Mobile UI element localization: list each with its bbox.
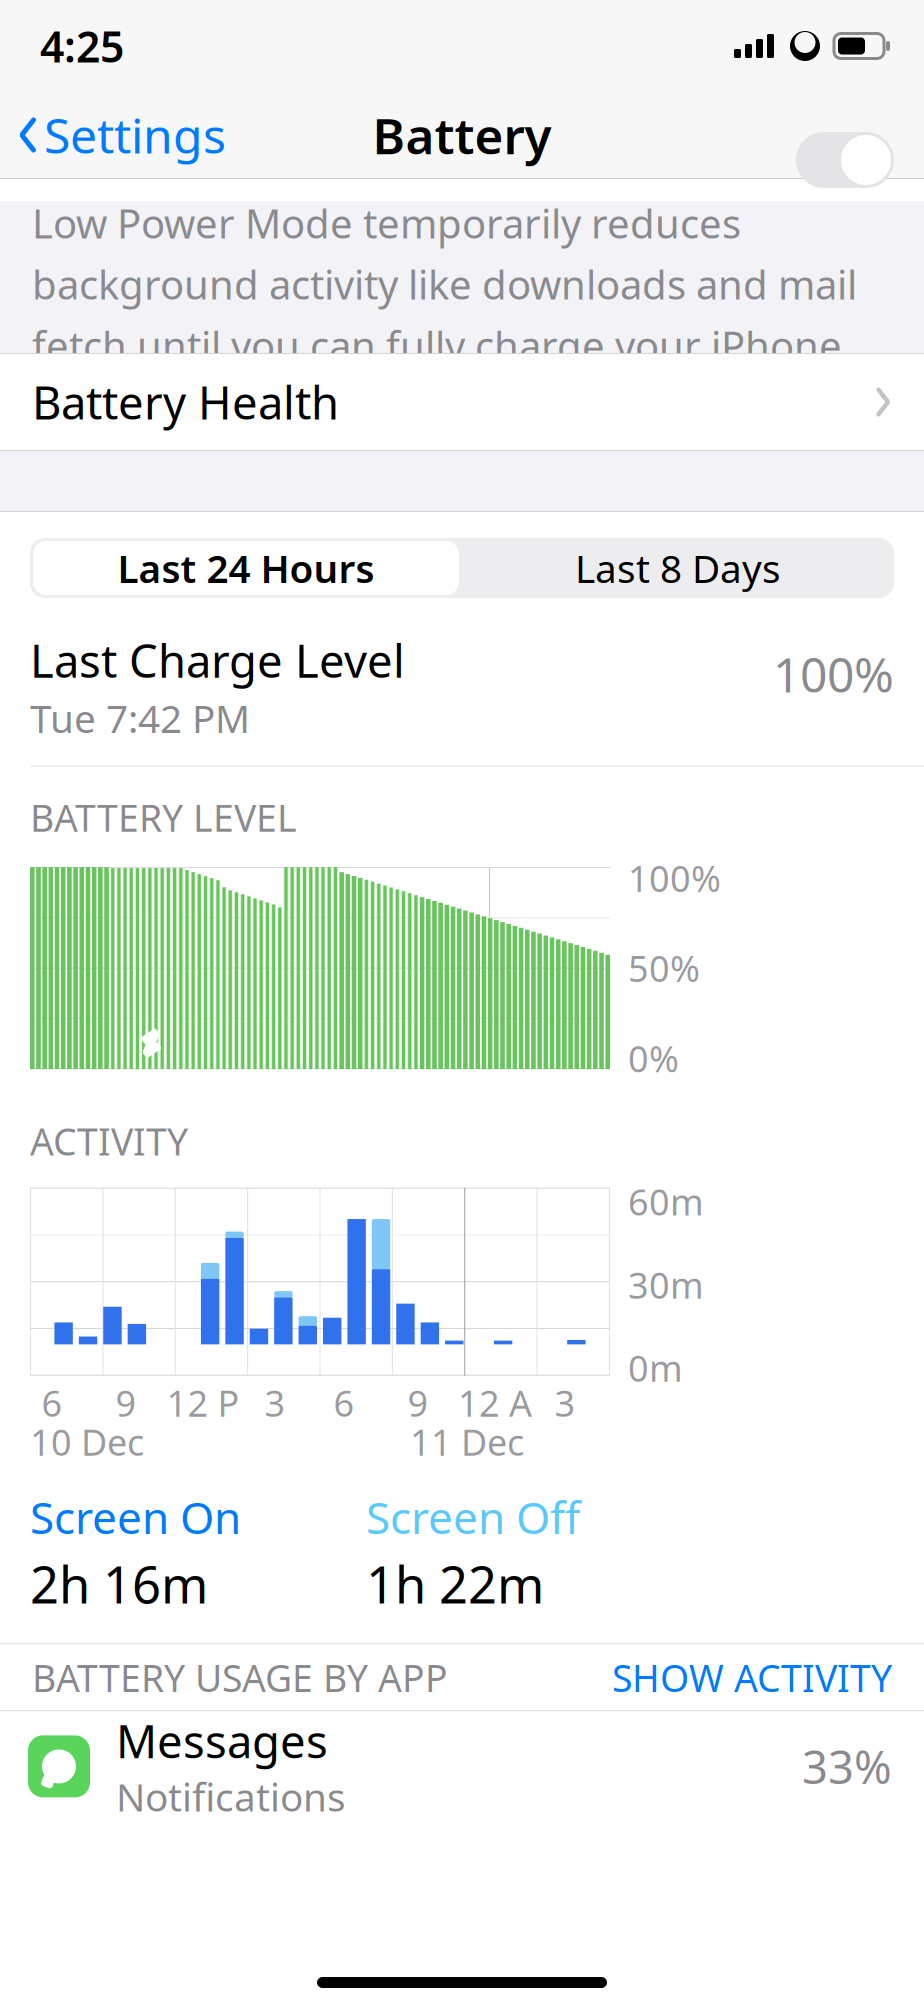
staticText: Tue 7:42 PM (30, 692, 250, 743)
staticText: ACTIVITY (30, 1116, 188, 1166)
staticText: Low Power Mode temporarily reduces backg… (32, 196, 857, 372)
staticText: SHOW ACTIVITY (612, 1653, 892, 1702)
button[interactable]: SHOW ACTIVITY (612, 1653, 892, 1702)
staticText: Screen On (30, 1488, 241, 1546)
staticText: 12 P (166, 1379, 239, 1427)
button[interactable]: Messages (0, 1711, 924, 1821)
staticText: 33% (802, 1736, 892, 1796)
staticText: 9 (115, 1379, 136, 1427)
staticText: 3 (554, 1379, 575, 1427)
staticText: 3 (264, 1379, 285, 1427)
staticText: Last Charge Level (30, 630, 405, 690)
staticText: Messages (116, 1711, 328, 1771)
staticText: 11 Dec (410, 1418, 524, 1466)
staticText: 10 Dec (30, 1418, 144, 1466)
button[interactable]: Settings (0, 93, 226, 177)
staticText: Notifications (116, 1771, 346, 1822)
staticText: 6 (333, 1379, 354, 1427)
staticText: 1h 22m (366, 1550, 544, 1617)
staticText: Battery Health (32, 372, 339, 432)
staticText: Last 8 Days (575, 542, 781, 594)
staticText: 30m (628, 1261, 704, 1309)
staticText: 2h 16m (30, 1550, 208, 1617)
staticText: Settings (44, 103, 226, 167)
staticText: 12 A (458, 1379, 532, 1427)
staticText: Last 24 Hours (117, 542, 374, 594)
staticText: BATTERY LEVEL (30, 792, 297, 842)
staticText: 0m (628, 1344, 683, 1392)
staticText: BATTERY USAGE BY APP (32, 1653, 448, 1702)
staticText: 100% (773, 642, 894, 706)
button[interactable]: Last 8 Days (462, 538, 894, 598)
staticText: 0% (628, 1034, 679, 1082)
staticText: Battery (372, 102, 551, 168)
staticText: 60m (628, 1178, 704, 1225)
staticText: 6 (41, 1379, 62, 1427)
button[interactable]: Battery Health (0, 354, 924, 450)
staticText: 9 (407, 1379, 428, 1427)
staticText: Screen Off (366, 1488, 580, 1546)
staticText: 100% (628, 854, 721, 902)
staticText: 4:25 (40, 18, 124, 74)
staticText: 50% (628, 944, 700, 992)
button[interactable]: Last 24 Hours (30, 538, 462, 598)
